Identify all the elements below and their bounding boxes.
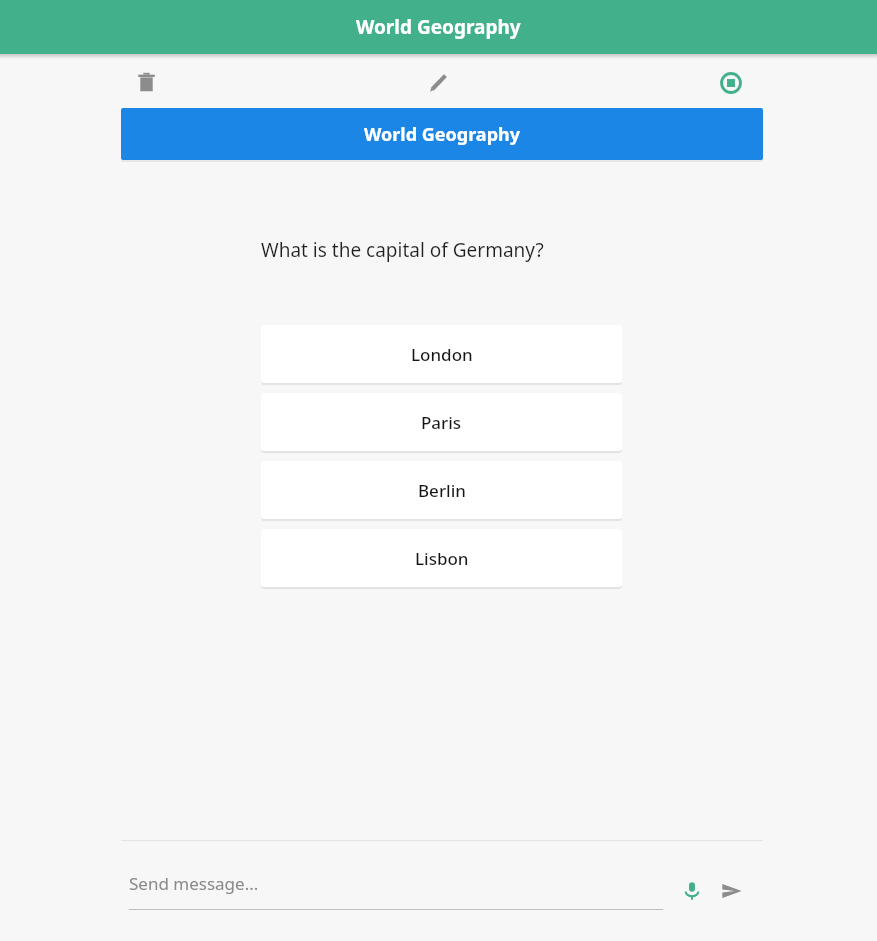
staticText: World Geography bbox=[356, 14, 521, 40]
button[interactable]: Berlin bbox=[261, 461, 622, 519]
staticText: Send message... bbox=[129, 872, 259, 895]
button[interactable]: Delete bbox=[0, 59, 292, 106]
button[interactable]: Voice input bbox=[675, 874, 709, 908]
staticText: Paris bbox=[421, 411, 462, 434]
staticText: What is the capital of Germany? bbox=[261, 237, 544, 263]
button[interactable]: World Geography bbox=[121, 108, 763, 160]
button[interactable]: Send message... bbox=[129, 872, 663, 910]
staticText: World Geography bbox=[364, 122, 520, 147]
button[interactable]: Record bbox=[584, 59, 877, 106]
button[interactable]: Paris bbox=[261, 393, 622, 451]
button[interactable]: London bbox=[261, 325, 622, 383]
staticText: London bbox=[411, 343, 473, 366]
button[interactable]: Send bbox=[715, 874, 749, 908]
button[interactable]: Lisbon bbox=[261, 529, 622, 587]
staticText: Lisbon bbox=[415, 547, 469, 570]
staticText: Berlin bbox=[418, 479, 466, 502]
button[interactable]: Edit bbox=[292, 59, 584, 106]
